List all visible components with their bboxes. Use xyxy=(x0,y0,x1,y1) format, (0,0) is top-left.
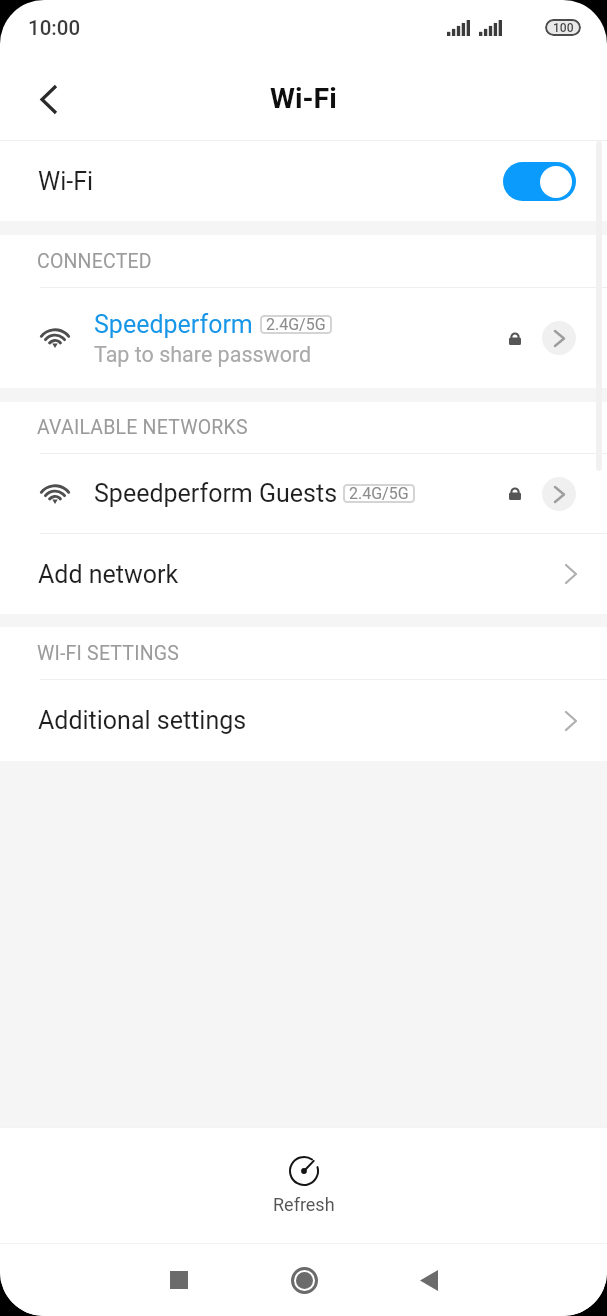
staticText: Speedperform xyxy=(94,310,253,339)
staticText: Wi-Fi xyxy=(270,82,337,115)
button[interactable]: Network details xyxy=(542,321,576,355)
button[interactable]: Home xyxy=(268,1244,340,1316)
button[interactable]: Network details xyxy=(542,477,576,511)
button[interactable]: Wi-Fi toggle xyxy=(503,162,576,201)
staticText: Refresh xyxy=(273,1194,335,1215)
button[interactable]: Speedperform xyxy=(0,288,607,388)
staticText: WI-FI SETTINGS xyxy=(37,642,180,665)
button[interactable]: Wi-Fi xyxy=(0,141,607,221)
button[interactable]: Recents xyxy=(143,1244,215,1316)
button[interactable]: Speedperform Guests xyxy=(0,454,607,533)
staticText: Wi-Fi xyxy=(38,167,94,196)
staticText: 100 xyxy=(553,21,574,35)
staticText: 2.4G/5G xyxy=(266,315,326,334)
button[interactable]: Additional settings xyxy=(0,680,607,761)
button[interactable]: Refresh xyxy=(0,1128,607,1243)
staticText: Tap to share password xyxy=(94,342,312,367)
button[interactable]: Add network xyxy=(0,534,607,614)
staticText: Speedperform Guests xyxy=(94,479,338,508)
staticText: CONNECTED xyxy=(37,250,152,273)
staticText: Additional settings xyxy=(38,706,247,735)
staticText: Add network xyxy=(38,560,179,589)
button[interactable]: Back xyxy=(21,71,77,127)
staticText: 2.4G/5G xyxy=(349,484,409,503)
button[interactable]: Back xyxy=(393,1244,465,1316)
staticText: 10:00 xyxy=(28,16,81,40)
staticText: AVAILABLE NETWORKS xyxy=(37,416,248,439)
